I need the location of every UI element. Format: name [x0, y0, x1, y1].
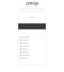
staticText: Settings — [25, 0, 38, 6]
